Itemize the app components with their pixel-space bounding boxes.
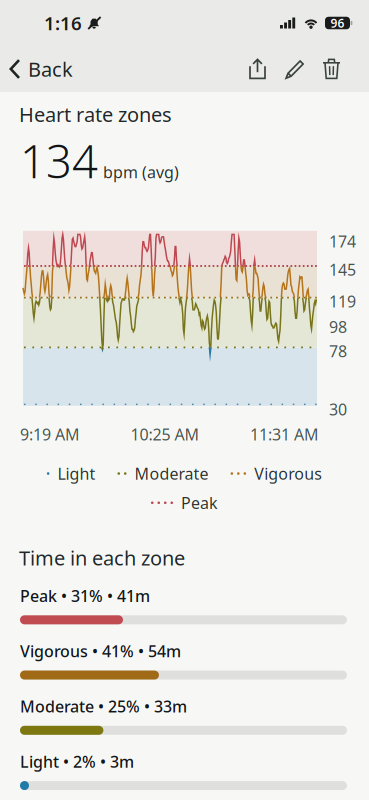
staticText: Back [28,56,73,82]
staticText: 30 [329,399,347,420]
staticText: 98 [329,316,347,337]
staticText: 96 [330,15,344,31]
staticText: Moderate • 25% • 33m [20,696,187,717]
staticText: bpm (avg) [103,161,179,183]
staticText: Vigorous • 41% • 54m [20,640,181,661]
staticText: 11:31 AM [250,424,319,445]
staticText: 10:25 AM [130,424,199,445]
staticText: 174 [329,231,356,252]
staticText: 119 [329,291,356,312]
staticText: 134 [20,131,98,191]
staticText: 1:16 [44,11,82,35]
staticText: Heart rate zones [19,101,172,128]
button[interactable]: Delete [313,54,350,84]
staticText: 9:19 AM [20,424,80,445]
button[interactable]: Back [0,50,81,88]
staticText: Light [57,463,95,484]
button[interactable]: Share [239,54,276,84]
staticText: Peak [181,492,218,513]
staticText: Time in each zone [19,544,185,571]
staticText: Moderate [135,463,209,484]
staticText: 145 [329,259,356,280]
button[interactable]: Edit [276,54,313,84]
staticText: Light • 2% • 3m [20,751,134,772]
staticText: 78 [329,340,347,362]
staticText: Peak • 31% • 41m [20,585,150,606]
staticText: Vigorous [254,463,322,484]
